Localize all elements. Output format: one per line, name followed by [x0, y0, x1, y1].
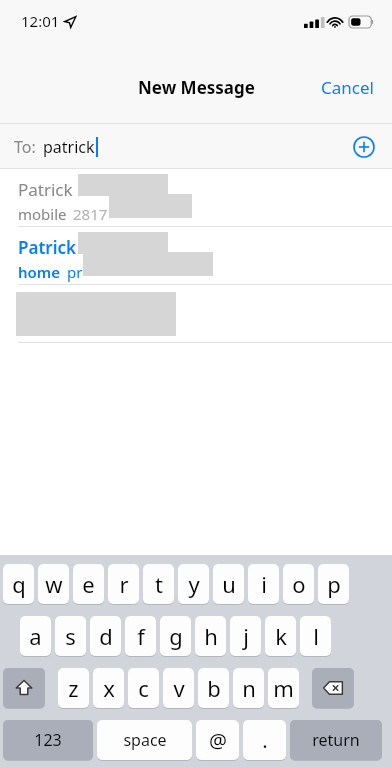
- staticText: To:: [14, 136, 36, 158]
- button[interactable]: Add contact: [346, 129, 382, 165]
- button[interactable]: w: [38, 564, 69, 606]
- staticText: m: [273, 673, 294, 703]
- staticText: @: [209, 727, 227, 754]
- staticText: 123: [34, 729, 62, 751]
- staticText: y: [188, 569, 200, 599]
- staticText: w: [45, 569, 63, 599]
- button[interactable]: v: [163, 668, 194, 710]
- staticText: z: [68, 673, 79, 703]
- button[interactable]: y: [178, 564, 209, 606]
- staticText: q: [12, 569, 26, 599]
- staticText: t: [155, 569, 163, 599]
- staticText: Patrick: [18, 236, 77, 259]
- staticText: c: [138, 673, 149, 703]
- button[interactable]: x: [93, 668, 124, 710]
- button[interactable]: e: [73, 564, 104, 606]
- staticText: pr: [67, 262, 83, 282]
- staticText: p: [327, 569, 341, 599]
- button[interactable]: c: [128, 668, 159, 710]
- staticText: home: [18, 262, 61, 282]
- staticText: n: [242, 673, 256, 703]
- button[interactable]: f: [125, 616, 156, 658]
- staticText: e: [82, 569, 95, 599]
- staticText: v: [173, 673, 185, 703]
- button[interactable]: a: [20, 616, 51, 658]
- button[interactable]: g: [160, 616, 191, 658]
- staticText: Cancel: [321, 76, 374, 99]
- button[interactable]: i: [248, 564, 279, 606]
- staticText: mobile: [18, 204, 67, 224]
- button[interactable]: Delete: [312, 668, 354, 710]
- staticText: New Message: [138, 76, 255, 99]
- staticText: patrick: [43, 136, 95, 158]
- staticText: h: [204, 621, 218, 651]
- staticText: d: [99, 621, 113, 651]
- button[interactable]: s: [55, 616, 86, 658]
- button[interactable]: m: [268, 668, 299, 710]
- button[interactable]: 123: [3, 720, 93, 762]
- button[interactable]: d: [90, 616, 121, 658]
- button[interactable]: l: [300, 616, 331, 658]
- staticText: j: [243, 621, 249, 651]
- button[interactable]: t: [143, 564, 174, 606]
- staticText: x: [103, 673, 115, 703]
- button[interactable]: h: [195, 616, 226, 658]
- button[interactable]: o: [283, 564, 314, 606]
- staticText: o: [292, 569, 306, 599]
- staticText: .: [262, 727, 268, 754]
- staticText: space: [123, 729, 167, 751]
- button[interactable]: Shift: [3, 668, 45, 710]
- button[interactable]: b: [198, 668, 229, 710]
- staticText: return: [312, 729, 360, 751]
- button[interactable]: .: [243, 720, 286, 762]
- staticText: r: [119, 569, 129, 599]
- button[interactable]: z: [58, 668, 89, 710]
- button[interactable]: Patrick: [0, 169, 392, 227]
- staticText: f: [137, 621, 145, 651]
- button[interactable]: Cancel: [303, 68, 392, 107]
- button[interactable]: r: [108, 564, 139, 606]
- button[interactable]: n: [233, 668, 264, 710]
- button[interactable]: space: [97, 720, 192, 762]
- staticText: 12:01: [21, 11, 60, 31]
- button[interactable]: q: [3, 564, 34, 606]
- staticText: i: [261, 569, 267, 599]
- button[interactable]: [0, 285, 392, 343]
- button[interactable]: p: [318, 564, 349, 606]
- staticText: b: [207, 673, 221, 703]
- staticText: u: [222, 569, 236, 599]
- button[interactable]: u: [213, 564, 244, 606]
- staticText: k: [275, 621, 287, 651]
- button[interactable]: j: [230, 616, 261, 658]
- staticText: a: [29, 621, 42, 651]
- button[interactable]: k: [265, 616, 296, 658]
- staticText: l: [313, 621, 319, 651]
- staticText: Patrick: [18, 178, 73, 201]
- button[interactable]: @: [196, 720, 239, 762]
- button[interactable]: return: [290, 720, 382, 762]
- staticText: g: [169, 621, 183, 651]
- button[interactable]: Patrick: [0, 227, 392, 285]
- staticText: s: [65, 621, 76, 651]
- staticText: 2817: [73, 204, 108, 224]
